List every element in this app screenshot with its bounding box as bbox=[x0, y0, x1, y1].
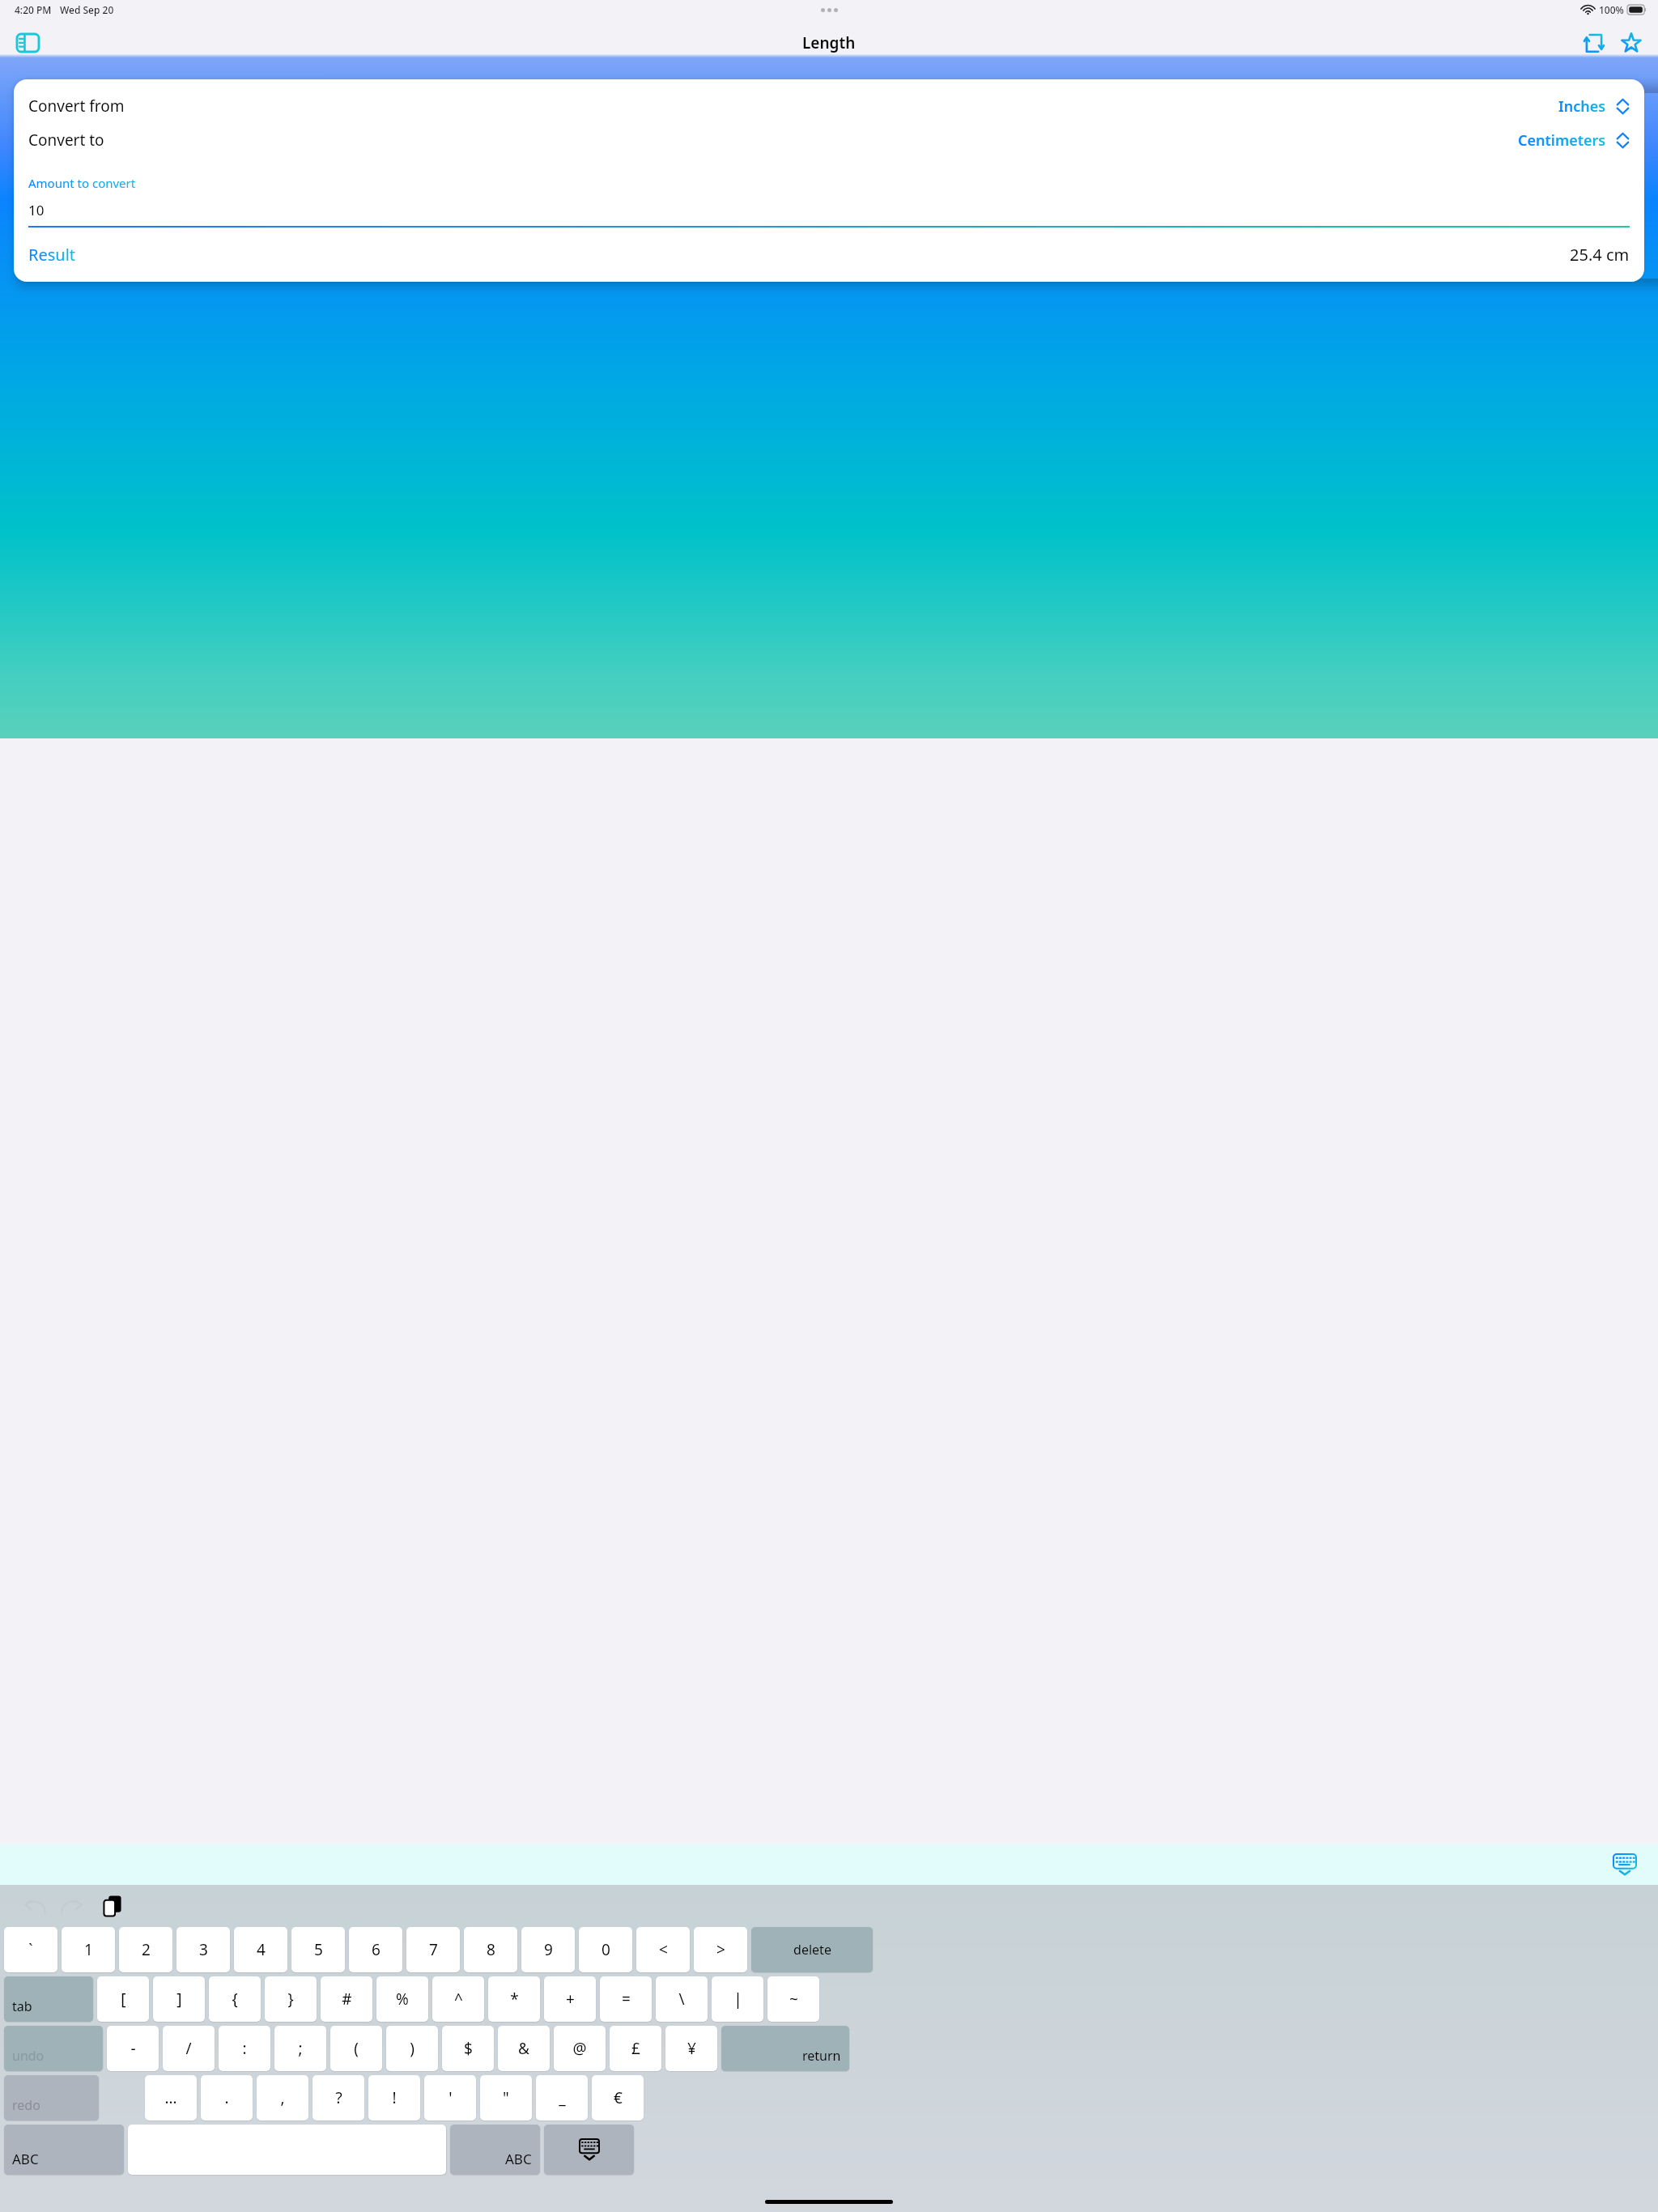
staticText: * bbox=[510, 1989, 519, 2010]
button[interactable]: " bbox=[480, 2075, 532, 2121]
staticText: @ bbox=[572, 2038, 587, 2059]
button[interactable]: | bbox=[712, 1976, 763, 2022]
button[interactable]: ; bbox=[274, 2026, 326, 2071]
button[interactable]: tab bbox=[4, 1976, 93, 2022]
button[interactable]: ABC bbox=[4, 2125, 124, 2175]
button[interactable]: £ bbox=[610, 2026, 661, 2071]
staticText: ¥ bbox=[687, 2038, 696, 2059]
button[interactable]: : bbox=[219, 2026, 270, 2071]
staticText: " bbox=[503, 2087, 509, 2108]
other: Dismiss keyboard bbox=[544, 2125, 634, 2175]
button[interactable]: 2 bbox=[119, 1927, 172, 1972]
staticText: 3 bbox=[199, 1939, 208, 1960]
button[interactable]: * bbox=[488, 1976, 540, 2022]
button[interactable]: 5 bbox=[291, 1927, 345, 1972]
button[interactable]: { bbox=[209, 1976, 261, 2022]
button[interactable]: undo bbox=[4, 2026, 103, 2071]
button[interactable]: ! bbox=[368, 2075, 420, 2121]
staticText: delete bbox=[793, 1941, 831, 1959]
button[interactable]: ( bbox=[330, 2026, 382, 2071]
staticText: } bbox=[287, 1989, 294, 2010]
button[interactable]: - bbox=[107, 2026, 159, 2071]
button[interactable]: 9 bbox=[521, 1927, 575, 1972]
staticText: … bbox=[164, 2087, 177, 2108]
staticText: 9 bbox=[544, 1939, 553, 1960]
button[interactable]: } bbox=[265, 1976, 317, 2022]
staticText: Length bbox=[802, 32, 856, 53]
staticText: _ bbox=[559, 2087, 566, 2108]
button[interactable]: ? bbox=[312, 2075, 364, 2121]
button[interactable]: ' bbox=[424, 2075, 476, 2121]
staticText: ` bbox=[28, 1939, 33, 1960]
button[interactable]: 1 bbox=[62, 1927, 115, 1972]
button[interactable]: ¥ bbox=[665, 2026, 717, 2071]
button[interactable]: Paste bbox=[96, 1889, 130, 1923]
button[interactable]: ~ bbox=[767, 1976, 819, 2022]
button[interactable]: @ bbox=[554, 2026, 606, 2071]
staticText: ] bbox=[176, 1989, 182, 2010]
button[interactable]: delete bbox=[751, 1927, 873, 1972]
button[interactable]: \ bbox=[656, 1976, 708, 2022]
button[interactable]: ] bbox=[153, 1976, 205, 2022]
staticText: 6 bbox=[372, 1939, 380, 1960]
button[interactable]: € bbox=[592, 2075, 644, 2121]
button[interactable]: return bbox=[721, 2026, 849, 2071]
button[interactable]: = bbox=[600, 1976, 652, 2022]
button[interactable]: Favorite bbox=[1613, 24, 1650, 62]
button[interactable]: ^ bbox=[432, 1976, 484, 2022]
button[interactable]: / bbox=[163, 2026, 215, 2071]
button[interactable]: [ bbox=[97, 1976, 149, 2022]
button[interactable]: Hide keyboard bbox=[1606, 1846, 1643, 1883]
button[interactable]: 4 bbox=[234, 1927, 287, 1972]
staticText: 0 bbox=[602, 1939, 610, 1960]
staticText: & bbox=[518, 2038, 529, 2059]
button[interactable]: Amount to convert bbox=[14, 175, 1644, 228]
staticText: 2 bbox=[142, 1939, 151, 1960]
button[interactable]: _ bbox=[536, 2075, 588, 2121]
button[interactable]: 0 bbox=[579, 1927, 632, 1972]
button[interactable]: … bbox=[145, 2075, 197, 2121]
staticText: ' bbox=[449, 2087, 453, 2108]
staticText: / bbox=[185, 2038, 192, 2059]
staticText: ABC bbox=[12, 2150, 39, 2168]
staticText: Inches bbox=[1558, 96, 1606, 117]
button[interactable]: 7 bbox=[406, 1927, 460, 1972]
button[interactable]: 8 bbox=[464, 1927, 517, 1972]
button[interactable]: Convert to bbox=[14, 125, 1644, 155]
staticText: Convert from bbox=[28, 96, 125, 117]
staticText: 4 bbox=[257, 1939, 266, 1960]
button[interactable]: Convert from bbox=[14, 91, 1644, 121]
button[interactable]: 3 bbox=[176, 1927, 230, 1972]
button[interactable]: 6 bbox=[349, 1927, 402, 1972]
button[interactable]: ) bbox=[386, 2026, 438, 2071]
button[interactable]: & bbox=[498, 2026, 550, 2071]
button[interactable]: + bbox=[544, 1976, 596, 2022]
staticText: { bbox=[232, 1989, 238, 2010]
button[interactable]: $ bbox=[442, 2026, 494, 2071]
staticText: > bbox=[716, 1939, 725, 1960]
button[interactable]: # bbox=[321, 1976, 372, 2022]
button[interactable]: Dismiss keyboard bbox=[544, 2125, 634, 2175]
button[interactable]: < bbox=[636, 1927, 690, 1972]
button[interactable]: , bbox=[257, 2075, 308, 2121]
staticText: # bbox=[342, 1989, 352, 2010]
staticText: 8 bbox=[487, 1939, 495, 1960]
button[interactable]: Show sidebar bbox=[10, 25, 45, 61]
button[interactable]: ` bbox=[4, 1927, 57, 1972]
button[interactable]: Swap units bbox=[1575, 24, 1613, 62]
button[interactable]: ABC bbox=[450, 2125, 540, 2175]
staticText: | bbox=[733, 1989, 742, 2010]
button[interactable]: % bbox=[376, 1976, 428, 2022]
staticText: Convert to bbox=[28, 130, 104, 151]
button[interactable]: redo bbox=[4, 2075, 99, 2121]
staticText: - bbox=[130, 2038, 136, 2059]
staticText: ; bbox=[298, 2038, 303, 2059]
staticText: £ bbox=[631, 2038, 640, 2059]
staticText: ! bbox=[392, 2087, 397, 2108]
button[interactable]: . bbox=[201, 2075, 253, 2121]
button[interactable]: > bbox=[694, 1927, 747, 1972]
staticText: tab bbox=[12, 1997, 32, 2015]
